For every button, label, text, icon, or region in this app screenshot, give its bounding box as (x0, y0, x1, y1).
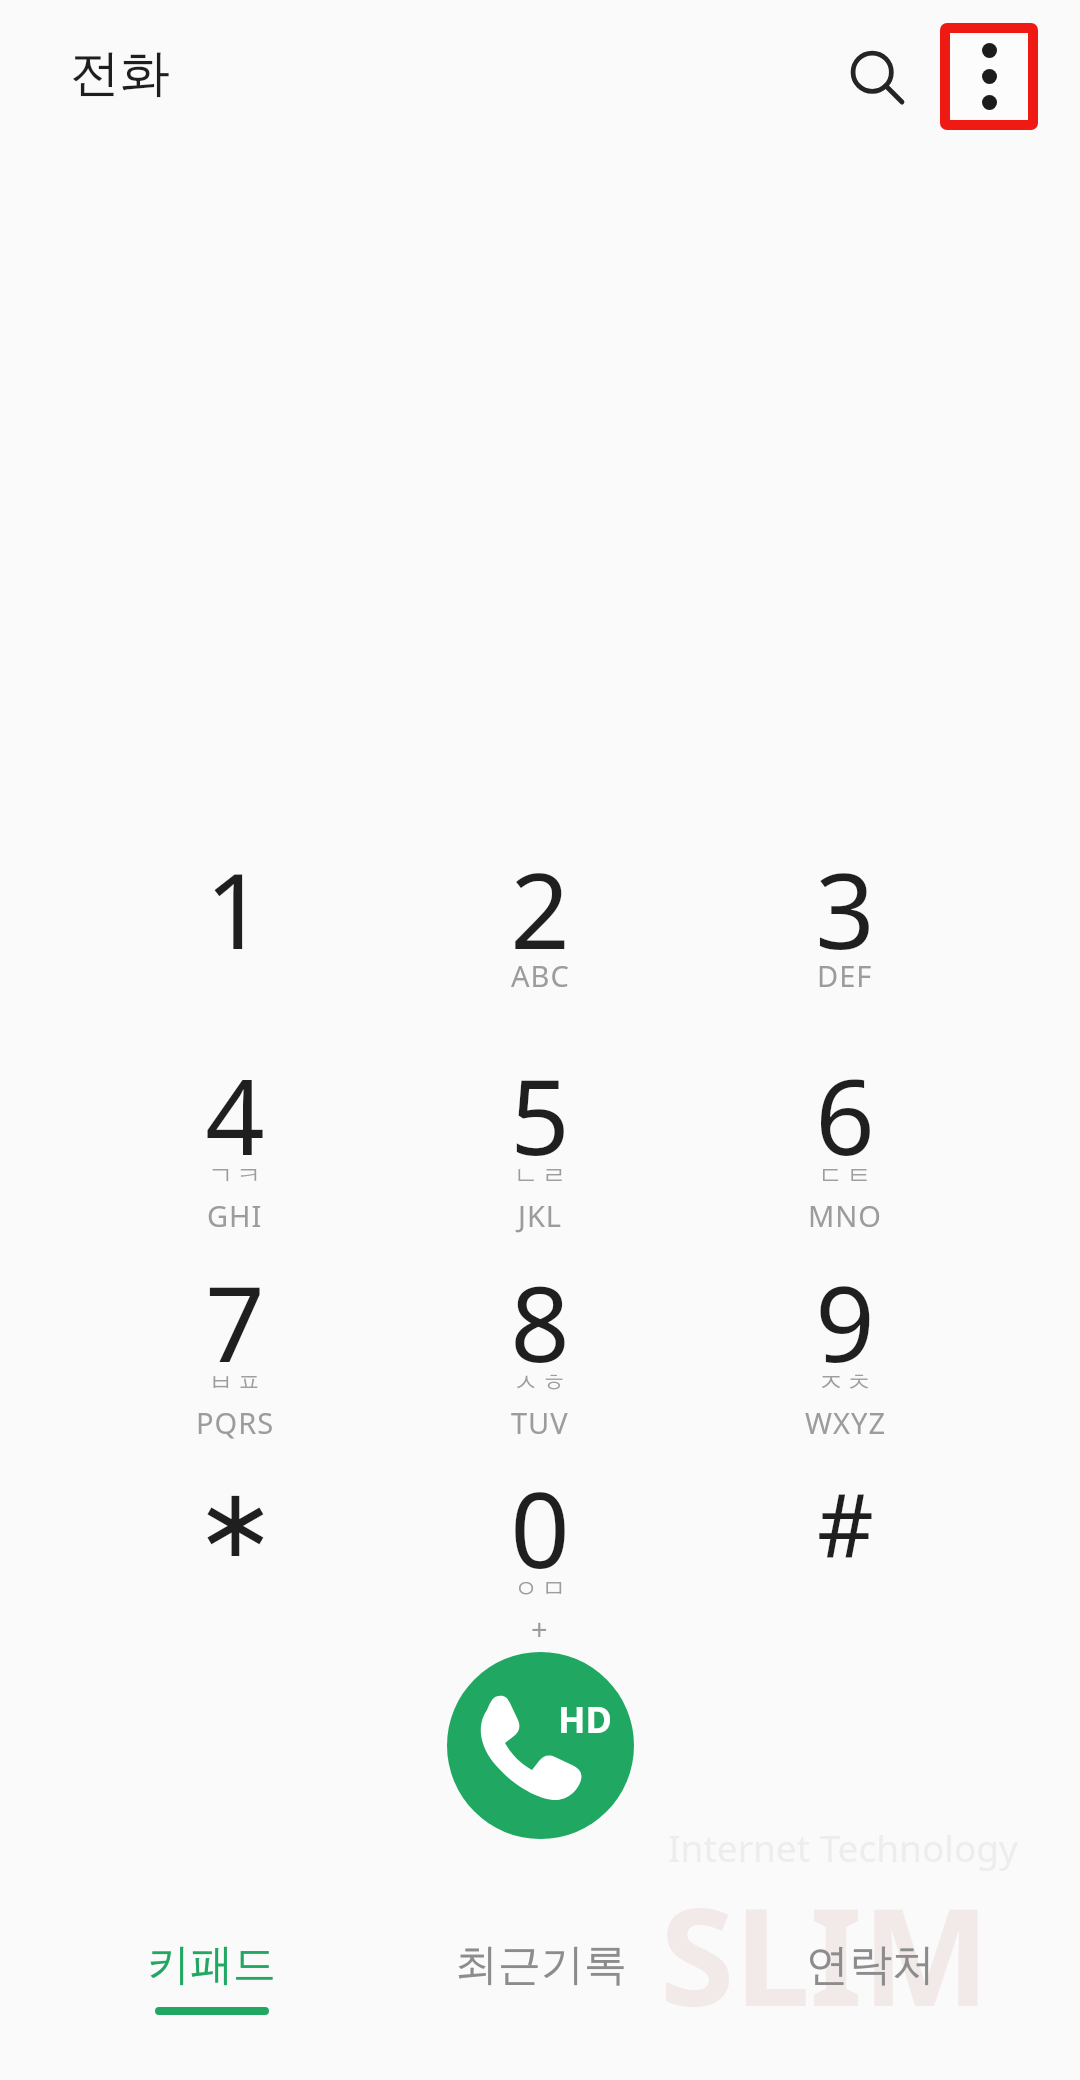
staticText: ABC (511, 956, 570, 995)
staticText: Internet Technology (668, 1822, 1018, 1872)
button[interactable]: # (700, 1457, 990, 1655)
staticText: SLIM (660, 1862, 990, 2046)
button[interactable]: 전화 (70, 42, 170, 105)
button[interactable]: More options (950, 33, 1028, 120)
staticText: PQRS (196, 1403, 275, 1442)
button[interactable]: 4 (90, 1044, 380, 1242)
button[interactable]: Search (834, 34, 922, 122)
staticText: ㅈㅊ (817, 1367, 873, 1398)
staticText: ㄱㅋ (207, 1160, 263, 1191)
staticText: + (531, 1609, 549, 1648)
button[interactable]: 8 (395, 1251, 685, 1449)
staticText: 9 (815, 1251, 875, 1367)
button[interactable]: Call (447, 1652, 634, 1839)
staticText: HD (558, 1695, 612, 1744)
staticText: JKL (518, 1196, 563, 1235)
staticText: 4 (205, 1044, 265, 1160)
button[interactable]: 3 (700, 838, 990, 1036)
staticText: 2 (510, 838, 570, 954)
staticText: ㅂㅍ (207, 1367, 263, 1398)
button[interactable]: 9 (700, 1251, 990, 1449)
staticText: 5 (510, 1044, 570, 1160)
staticText: 6 (815, 1044, 875, 1160)
button[interactable]: 5 (395, 1044, 685, 1242)
staticText: GHI (207, 1196, 263, 1235)
staticText: ∗ (195, 1467, 276, 1579)
staticText: ㅅㅎ (512, 1367, 568, 1398)
staticText: 키패드 (147, 1938, 276, 1992)
staticText: ㄷㅌ (817, 1160, 873, 1191)
button[interactable]: 연락처 (705, 1906, 1035, 2046)
button[interactable]: 7 (90, 1251, 380, 1449)
staticText: WXYZ (805, 1403, 886, 1442)
button[interactable]: 키패드 (46, 1906, 376, 2046)
staticText: 0 (510, 1457, 570, 1573)
button[interactable]: 1 (90, 838, 380, 1036)
staticText: 전화 (70, 42, 170, 105)
button[interactable]: 0 (395, 1457, 685, 1655)
staticText: ㄴㄹ (512, 1160, 568, 1191)
staticText: ㅇㅁ (512, 1573, 568, 1604)
staticText: 3 (815, 838, 875, 954)
staticText: # (817, 1463, 874, 1583)
staticText: 최근기록 (455, 1938, 627, 1992)
button[interactable]: ∗ (90, 1457, 380, 1655)
staticText: 1 (205, 838, 265, 954)
staticText: 8 (510, 1251, 570, 1367)
staticText: TUV (511, 1403, 569, 1442)
button[interactable]: 최근기록 (376, 1906, 706, 2046)
staticText: 7 (205, 1251, 265, 1367)
button[interactable]: 2 (395, 838, 685, 1036)
staticText: MNO (808, 1196, 882, 1235)
button[interactable]: 6 (700, 1044, 990, 1242)
staticText: 연락처 (806, 1938, 935, 1992)
staticText: DEF (817, 956, 873, 995)
